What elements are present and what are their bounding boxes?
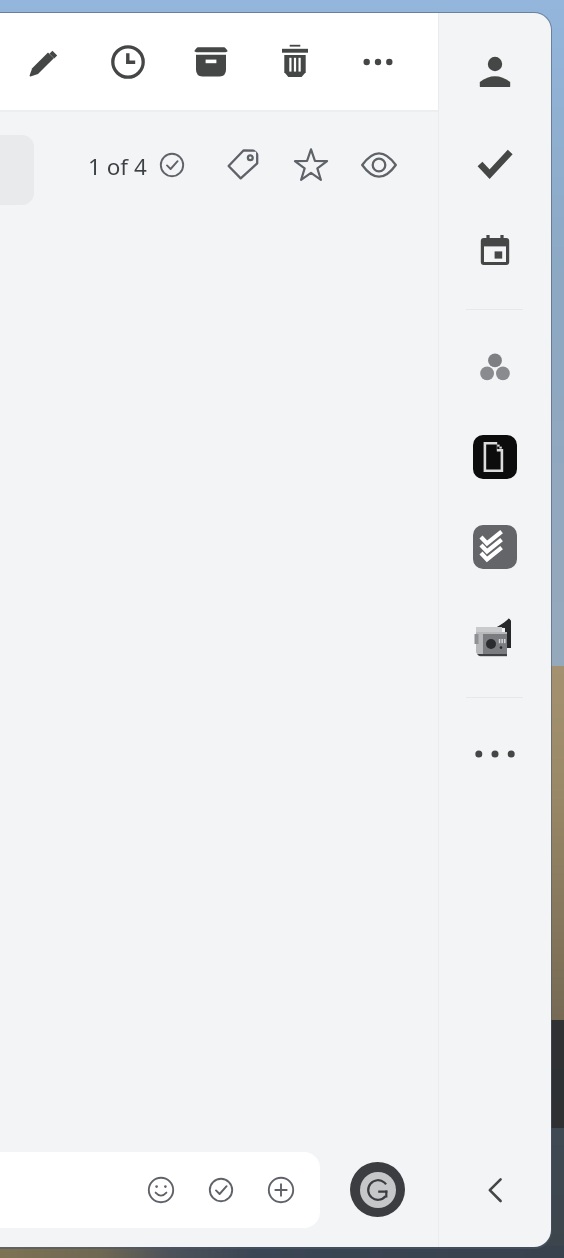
button[interactable]: Insert task — [203, 1172, 239, 1208]
button[interactable]: More options — [358, 42, 398, 82]
button[interactable]: Asana — [473, 345, 517, 389]
button[interactable]: Select conversation — [153, 146, 191, 184]
button[interactable]: Todoist — [473, 525, 517, 569]
button[interactable]: Mark as unread — [360, 146, 398, 184]
button[interactable]: Delete — [275, 42, 315, 82]
button[interactable]: Calendar — [473, 229, 517, 273]
button[interactable]: Refresh — [350, 1162, 405, 1217]
button[interactable]: Star — [292, 146, 330, 184]
button[interactable]: Docs — [473, 435, 517, 479]
button[interactable]: Video meetings — [471, 614, 519, 662]
button[interactable]: Add attachment — [263, 1172, 299, 1208]
button[interactable]: Tasks — [473, 141, 517, 185]
staticText: 1 of 4 — [88, 151, 147, 182]
button[interactable]: Contacts — [473, 49, 517, 93]
button[interactable]: Snooze — [108, 42, 148, 82]
button[interactable]: Hide side panel — [473, 1168, 517, 1212]
button[interactable]: Insert emoji — [143, 1172, 179, 1208]
button[interactable]: Labels — [224, 146, 262, 184]
button[interactable] — [0, 1152, 320, 1228]
button[interactable]: Compose — [24, 42, 64, 82]
button[interactable]: More add-ons — [473, 732, 517, 776]
button[interactable]: Archive — [191, 42, 231, 82]
